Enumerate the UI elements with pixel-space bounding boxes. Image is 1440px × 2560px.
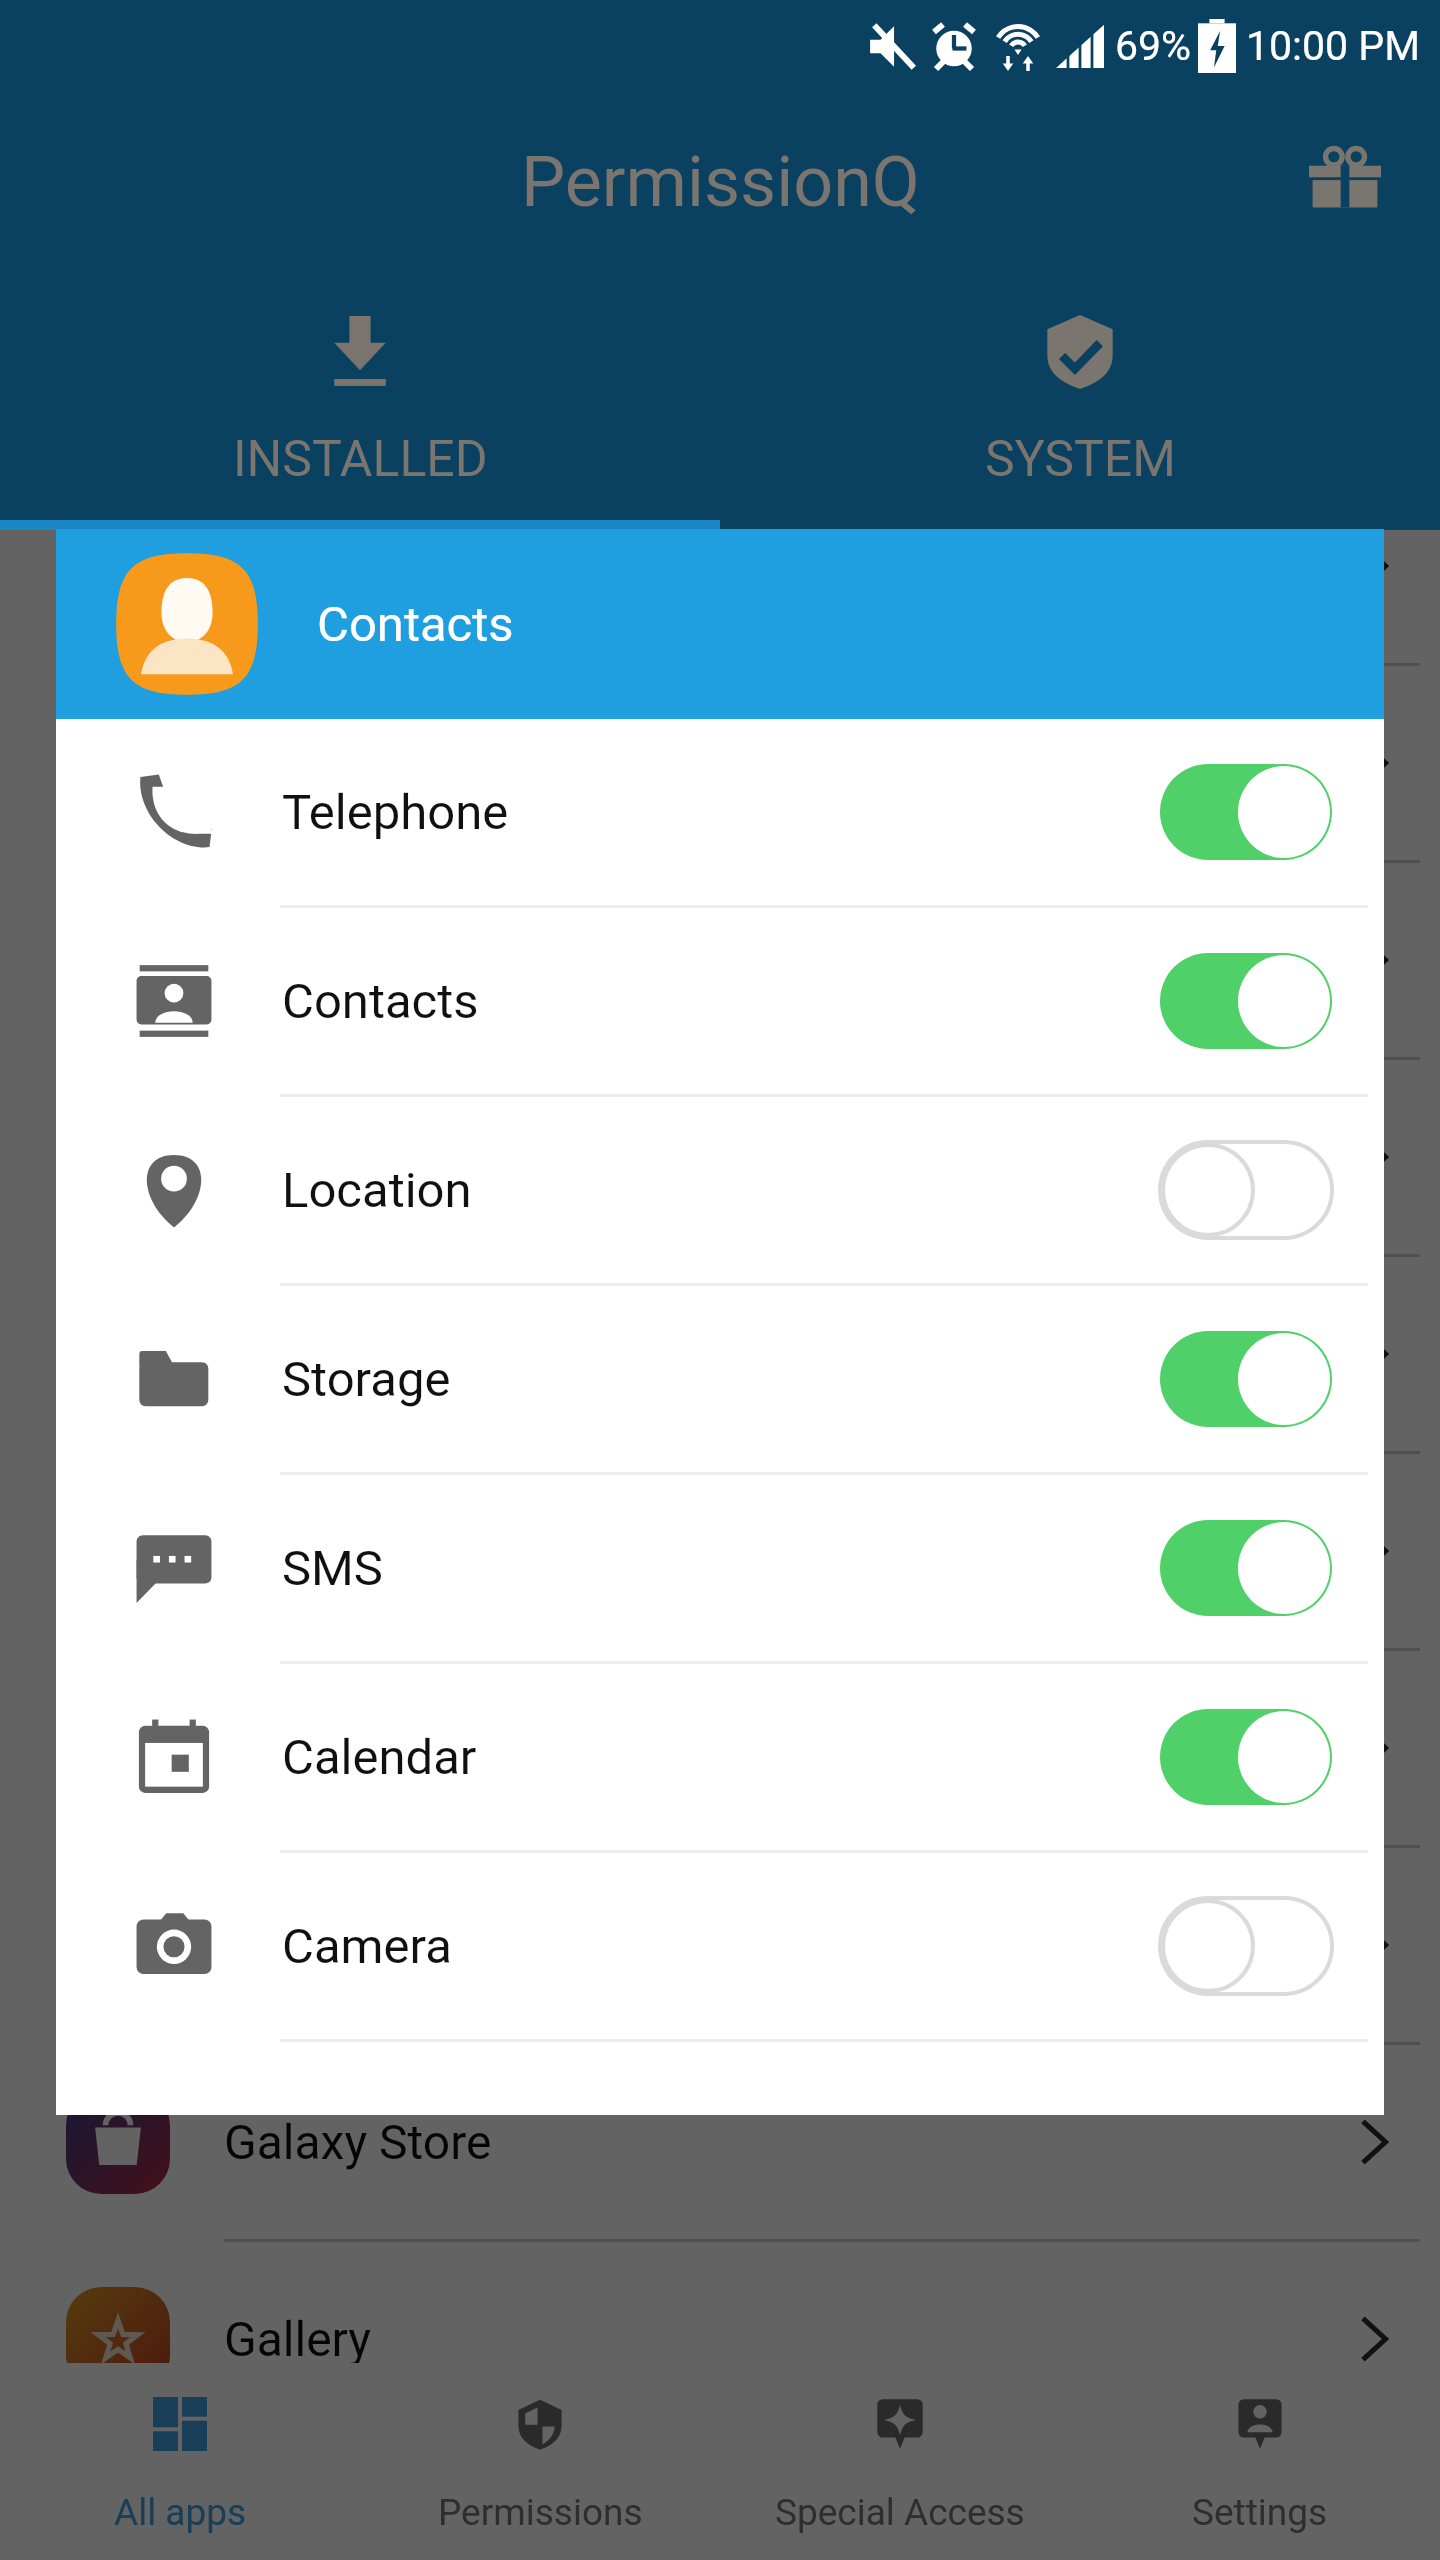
button[interactable]: INSTALLED	[0, 270, 720, 530]
button[interactable]: Special Access	[720, 2363, 1080, 2560]
other: Open app permissions	[1328, 717, 1420, 809]
button[interactable]: Camera	[56, 1853, 1384, 2039]
button[interactable]: Settings	[1080, 2363, 1440, 2560]
staticText: All apps	[114, 2491, 247, 2534]
other: Open app permissions	[1328, 2096, 1420, 2188]
button[interactable]: Galaxy Store	[0, 2045, 1440, 2239]
button[interactable]: Toggle permission	[1160, 758, 1332, 866]
button[interactable]: Contacts	[56, 908, 1384, 1094]
other: Open app permissions	[1328, 1505, 1420, 1597]
other: Open app permissions	[1328, 1702, 1420, 1794]
staticText: Contacts	[317, 596, 514, 653]
button[interactable]: SMS	[56, 1475, 1384, 1661]
button[interactable]: Calendar	[56, 1664, 1384, 1850]
other: Open app permissions	[1328, 2293, 1420, 2385]
button[interactable]: Gallery	[0, 2242, 1440, 2436]
button[interactable]: Open app permissions	[0, 1848, 1440, 2042]
staticText: Storage	[282, 1351, 451, 1408]
staticText: Contacts	[282, 973, 479, 1030]
button[interactable]: Open app permissions	[0, 863, 1440, 1057]
other: Open app permissions	[1328, 1899, 1420, 1991]
button[interactable]: Toggle permission	[1160, 947, 1332, 1055]
button[interactable]: Open app permissions	[0, 666, 1440, 860]
other: Open app permissions	[1328, 1111, 1420, 1203]
button[interactable]: Toggle permission	[1160, 1892, 1332, 2000]
staticText: INSTALLED	[233, 430, 488, 489]
other: Open app permissions	[1328, 914, 1420, 1006]
staticText: Telephone	[282, 784, 509, 841]
staticText: SYSTEM	[985, 430, 1176, 489]
button[interactable]: Telephone	[56, 719, 1384, 905]
button[interactable]: Open app permissions	[0, 469, 1440, 663]
staticText: Permissions	[438, 2491, 643, 2534]
staticText: Special Access	[775, 2491, 1025, 2534]
staticText: Settings	[1192, 2491, 1328, 2534]
button[interactable]: Location	[56, 1097, 1384, 1283]
other: Open app permissions	[1328, 1308, 1420, 1400]
button[interactable]: Open app permissions	[0, 1257, 1440, 1451]
staticText: 10:00 PM	[1246, 22, 1420, 70]
staticText: Gallery	[224, 2311, 371, 2367]
button[interactable]: Toggle permission	[1160, 1325, 1332, 1433]
staticText: Camera	[282, 1918, 452, 1975]
button[interactable]: Storage	[56, 1286, 1384, 1472]
staticText: Calendar	[282, 1729, 477, 1786]
button[interactable]: All apps	[0, 2363, 360, 2560]
other: Open app permissions	[1328, 520, 1420, 612]
staticText: PermissionQ	[521, 141, 920, 223]
button[interactable]: Toggle permission	[1160, 1514, 1332, 1622]
button[interactable]: SYSTEM	[720, 270, 1440, 530]
staticText: SMS	[282, 1540, 383, 1597]
button[interactable]: Open app permissions	[0, 1651, 1440, 1845]
staticText: Location	[282, 1162, 472, 1219]
button[interactable]: Open app permissions	[0, 1454, 1440, 1648]
button[interactable]: Toggle permission	[1160, 1703, 1332, 1811]
staticText: Galaxy Store	[224, 2114, 492, 2170]
button[interactable]: Permissions	[360, 2363, 720, 2560]
button[interactable]: Promotions	[1290, 128, 1400, 238]
staticText: 69%	[1115, 22, 1192, 70]
button[interactable]: Open app permissions	[0, 1060, 1440, 1254]
button[interactable]: Toggle permission	[1160, 1136, 1332, 1244]
